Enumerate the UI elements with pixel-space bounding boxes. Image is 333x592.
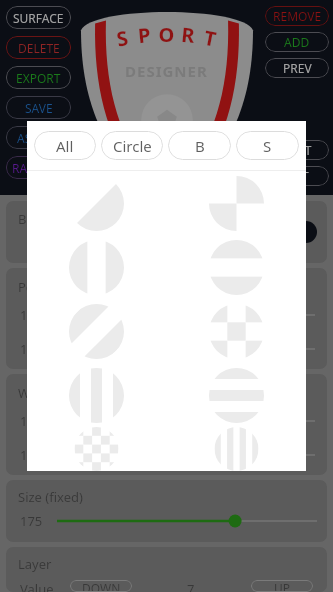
button[interactable]: EXPORT [6,66,71,89]
staticText: Width [18,384,55,402]
button[interactable] [27,235,166,299]
staticText: S [263,136,272,156]
button[interactable]: DELETE [6,36,71,59]
button[interactable]: SURFACE [6,6,71,29]
button[interactable] [166,427,306,471]
staticText: 7 [187,580,195,592]
staticText: DESIGNER [125,61,208,81]
button[interactable]: Circle [101,131,163,160]
button[interactable] [166,299,306,363]
staticText: SAVE [25,100,53,116]
staticText: B [195,136,205,156]
button[interactable]: REMOVE [265,6,329,26]
staticText: ADD [284,34,310,50]
staticText: DOWN [82,580,121,592]
staticText: 175 [20,446,43,464]
staticText: NEXT [282,142,312,158]
button[interactable]: S [236,131,299,160]
staticText: SURFACE [13,10,64,26]
button[interactable] [27,427,166,471]
button[interactable]: DOWN [70,580,132,592]
staticText: Layer [18,555,52,573]
staticText: DELETE [18,40,60,56]
staticText: 120 [20,306,43,324]
button[interactable]: ADD [265,32,329,52]
staticText: Position [18,278,68,296]
staticText: Circle [113,136,152,156]
button[interactable] [166,363,306,427]
button[interactable]: LIST [265,166,329,186]
button[interactable]: B [168,131,231,160]
button[interactable]: RANDOM [6,156,71,179]
staticText: Background [18,210,92,228]
button[interactable] [27,171,166,235]
button[interactable]: NEXT [265,140,329,160]
button[interactable]: UP [251,580,313,592]
button[interactable]: SAVE [6,96,71,119]
staticText: PREV [283,60,312,76]
button[interactable]: ASSIGN [6,126,71,149]
button[interactable] [27,299,166,363]
staticText: Size (fixed) [18,488,83,506]
staticText: All [56,136,74,156]
staticText: 175 [20,512,43,530]
staticText: LIST [285,168,309,184]
staticText: 120 [20,340,43,358]
button[interactable]: PREV [265,58,329,78]
button[interactable] [166,171,306,235]
button[interactable]: All [34,131,96,160]
staticText: 175 [20,412,43,430]
button[interactable] [166,235,306,299]
button[interactable] [27,363,166,427]
staticText: UP [274,580,291,592]
staticText: RANDOM [12,160,66,176]
staticText: EXPORT [16,70,61,86]
staticText: REMOVE [273,8,322,24]
staticText: Value [20,580,54,592]
staticText: ASSIGN [17,130,60,146]
